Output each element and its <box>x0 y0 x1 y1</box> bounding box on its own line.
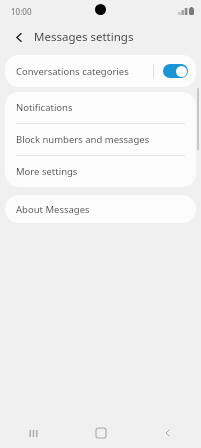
staticText: More settings <box>16 165 78 178</box>
button[interactable]: Navigate up <box>8 26 30 48</box>
button[interactable]: Recents <box>0 418 67 448</box>
button[interactable]: Conversations categories <box>5 55 196 87</box>
button[interactable]: Notifications <box>5 92 196 123</box>
staticText: Block numbers and messages <box>16 133 150 146</box>
staticText: About Messages <box>16 203 90 216</box>
staticText: 10:00 <box>11 6 32 17</box>
staticText: Messages settings <box>34 29 134 45</box>
button[interactable]: Home <box>67 418 134 448</box>
staticText: Notifications <box>16 101 73 114</box>
button[interactable]: Back <box>134 418 201 448</box>
button[interactable]: Conversations categories toggle <box>163 64 188 78</box>
staticText: Conversations categories <box>16 65 129 78</box>
button[interactable]: Block numbers and messages <box>5 124 196 155</box>
button[interactable]: More settings <box>5 156 196 187</box>
button[interactable]: About Messages <box>5 195 196 223</box>
